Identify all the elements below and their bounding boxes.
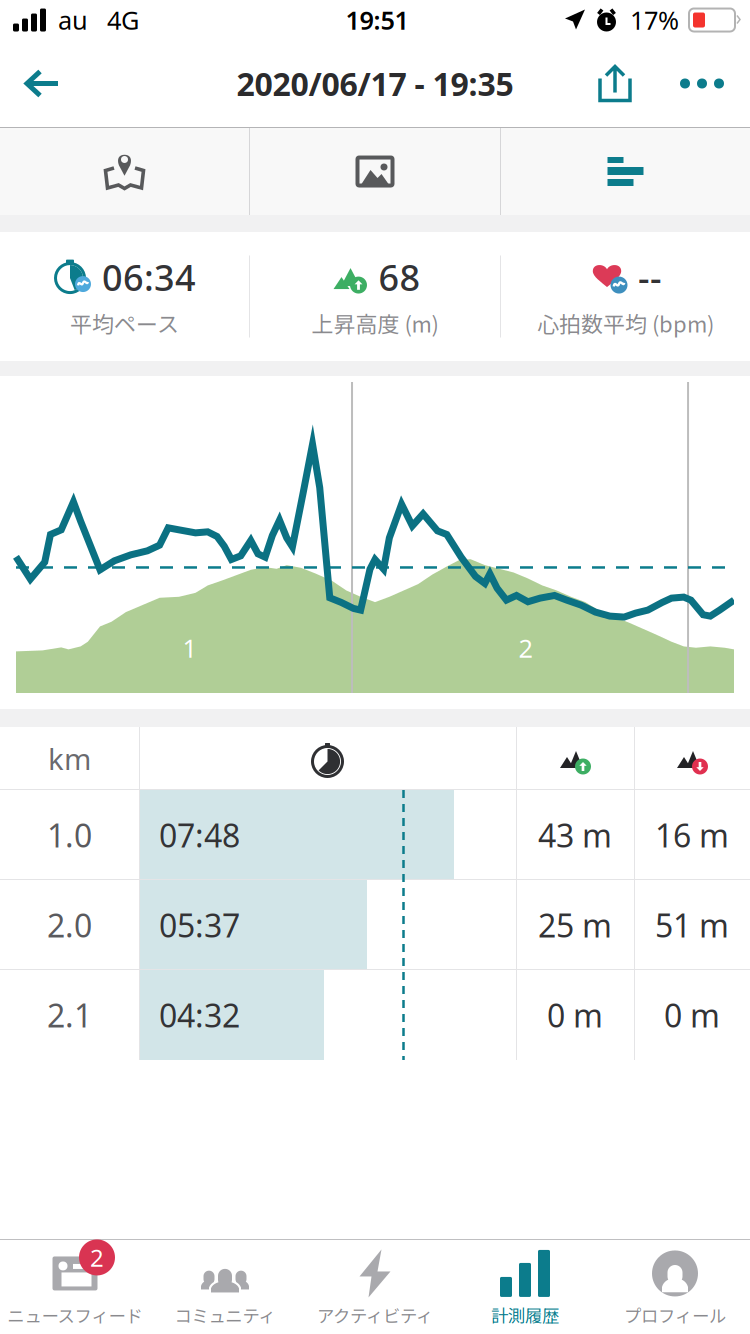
staticText: 4G (107, 3, 139, 37)
staticText: -- (638, 253, 662, 301)
staticText: 16 m (655, 814, 729, 856)
staticText: ニュースフィード (7, 1302, 142, 1328)
staticText: 17% (630, 3, 679, 37)
staticText: 51 m (655, 904, 729, 946)
staticText: コミュニティ (174, 1302, 275, 1328)
staticText: プロフィール (624, 1302, 726, 1328)
staticText: 04:32 (159, 994, 240, 1036)
button[interactable]: Back (0, 46, 86, 120)
staticText: 0 m (547, 994, 603, 1036)
button[interactable]: プロフィール (600, 1240, 750, 1334)
staticText: au (58, 3, 88, 37)
button[interactable]: Photos (250, 128, 500, 215)
staticText: 19:51 (345, 3, 408, 37)
staticText: 上昇高度 (m) (311, 307, 438, 339)
button[interactable]: アクティビティ (300, 1240, 450, 1334)
staticText: 心拍数平均 (bpm) (537, 307, 714, 339)
staticText: 06:34 (102, 253, 196, 301)
staticText: 平均ペース (70, 307, 179, 339)
button[interactable]: Map (0, 128, 249, 215)
staticText: 計測履歴 (491, 1302, 559, 1328)
staticText: アクティビティ (317, 1302, 433, 1328)
staticText: 68 (378, 253, 420, 301)
staticText: 25 m (538, 904, 612, 946)
staticText: 2020/06/17 - 19:35 (236, 62, 513, 105)
button[interactable]: 2 (0, 1240, 150, 1334)
staticText: 0 m (664, 994, 720, 1036)
staticText: 2.1 (47, 994, 92, 1036)
staticText: km (48, 739, 91, 778)
button[interactable]: Share (572, 40, 658, 126)
staticText: 2.0 (47, 904, 92, 946)
staticText: 05:37 (159, 904, 240, 946)
staticText: 1.0 (47, 814, 92, 856)
button[interactable]: 計測履歴 (450, 1240, 600, 1334)
staticText: 07:48 (159, 814, 240, 856)
staticText: 1 (183, 631, 197, 665)
button[interactable]: Stats (501, 128, 750, 215)
staticText: 2 (90, 1241, 104, 1273)
staticText: 43 m (538, 814, 612, 856)
button[interactable]: More (658, 40, 750, 126)
staticText: 2 (519, 631, 533, 665)
button[interactable]: コミュニティ (150, 1240, 300, 1334)
